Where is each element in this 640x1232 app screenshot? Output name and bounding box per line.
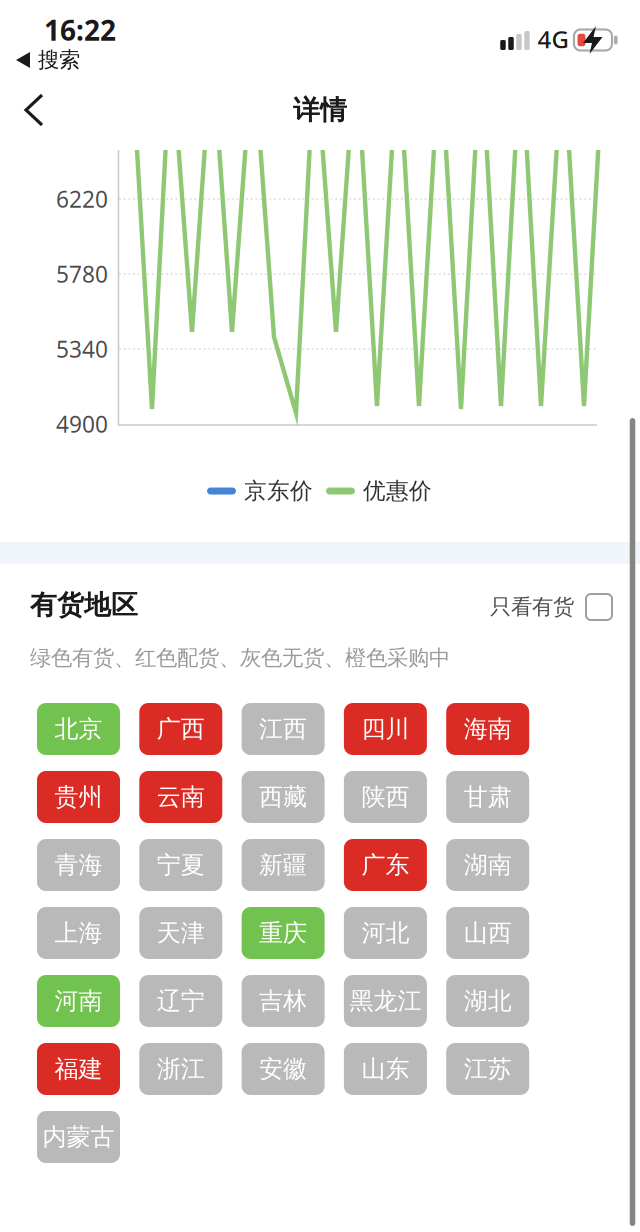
staticText: 绿色有货、红色配货、灰色无货、橙色采购中 — [30, 645, 450, 671]
button[interactable]: 广东 — [344, 839, 427, 891]
button[interactable]: 浙江 — [139, 1043, 222, 1095]
staticText: 青海 — [54, 850, 102, 880]
staticText: 四川 — [361, 714, 409, 744]
button[interactable]: 北京 — [37, 703, 120, 755]
staticText: 广东 — [361, 850, 409, 880]
button[interactable]: 贵州 — [37, 771, 120, 823]
button[interactable]: 上海 — [37, 907, 120, 959]
button[interactable]: 重庆 — [242, 907, 325, 959]
button[interactable]: 搜索 — [16, 47, 80, 73]
staticText: 安徽 — [259, 1054, 307, 1084]
staticText: 江西 — [259, 714, 307, 744]
button[interactable]: 山东 — [344, 1043, 427, 1095]
staticText: 宁夏 — [157, 850, 205, 880]
button[interactable]: 黑龙江 — [344, 975, 427, 1027]
staticText: 5780 — [56, 259, 108, 289]
button[interactable]: 海南 — [446, 703, 529, 755]
button[interactable]: 云南 — [139, 771, 222, 823]
staticText: 天津 — [157, 918, 205, 948]
button[interactable]: 江西 — [242, 703, 325, 755]
button[interactable]: 四川 — [344, 703, 427, 755]
button[interactable]: 京东价 — [207, 477, 313, 505]
staticText: 只看有货 — [490, 594, 574, 620]
staticText: 重庆 — [259, 918, 307, 948]
staticText: 内蒙古 — [42, 1122, 114, 1152]
staticText: 搜索 — [38, 47, 80, 73]
staticText: 山东 — [361, 1054, 409, 1084]
button[interactable]: 只看有货 — [490, 594, 612, 620]
staticText: 贵州 — [54, 782, 102, 812]
button[interactable]: 河南 — [37, 975, 120, 1027]
button[interactable]: 西藏 — [242, 771, 325, 823]
staticText: 京东价 — [244, 477, 313, 505]
button[interactable]: 山西 — [446, 907, 529, 959]
button[interactable]: 福建 — [37, 1043, 120, 1095]
button[interactable]: 天津 — [139, 907, 222, 959]
staticText: 4G — [537, 23, 568, 55]
staticText: 山西 — [464, 918, 512, 948]
staticText: 优惠价 — [363, 477, 432, 505]
staticText: 福建 — [54, 1054, 102, 1084]
button[interactable]: 甘肃 — [446, 771, 529, 823]
staticText: 4900 — [56, 409, 108, 439]
button[interactable]: 陕西 — [344, 771, 427, 823]
button[interactable]: 江苏 — [446, 1043, 529, 1095]
staticText: 新疆 — [259, 850, 307, 880]
staticText: 广西 — [157, 714, 205, 744]
staticText: 北京 — [54, 714, 102, 744]
staticText: 浙江 — [157, 1054, 205, 1084]
staticText: 5340 — [56, 334, 108, 364]
button[interactable]: 吉林 — [242, 975, 325, 1027]
button[interactable]: 湖北 — [446, 975, 529, 1027]
button[interactable]: 青海 — [37, 839, 120, 891]
staticText: 湖南 — [464, 850, 512, 880]
staticText: 江苏 — [464, 1054, 512, 1084]
staticText: 上海 — [54, 918, 102, 948]
staticText: 有货地区 — [30, 589, 138, 621]
button[interactable]: 优惠价 — [326, 477, 432, 505]
staticText: 甘肃 — [464, 782, 512, 812]
button[interactable]: 安徽 — [242, 1043, 325, 1095]
button[interactable]: 辽宁 — [139, 975, 222, 1027]
button[interactable]: Back — [24, 93, 44, 127]
staticText: 海南 — [464, 714, 512, 744]
staticText: 河北 — [361, 918, 409, 948]
staticText: 云南 — [157, 782, 205, 812]
button[interactable]: 宁夏 — [139, 839, 222, 891]
button[interactable]: 广西 — [139, 703, 222, 755]
button[interactable]: 内蒙古 — [37, 1111, 120, 1163]
staticText: 6220 — [56, 184, 108, 214]
staticText: 河南 — [54, 986, 102, 1016]
staticText: 详情 — [293, 94, 347, 126]
button[interactable]: 新疆 — [242, 839, 325, 891]
staticText: 湖北 — [464, 986, 512, 1016]
staticText: 辽宁 — [157, 986, 205, 1016]
staticText: 陕西 — [361, 782, 409, 812]
staticText: 黑龙江 — [349, 986, 421, 1016]
staticText: 16:22 — [44, 11, 116, 49]
button[interactable]: 湖南 — [446, 839, 529, 891]
staticText: 吉林 — [259, 986, 307, 1016]
button[interactable]: 河北 — [344, 907, 427, 959]
staticText: 西藏 — [259, 782, 307, 812]
